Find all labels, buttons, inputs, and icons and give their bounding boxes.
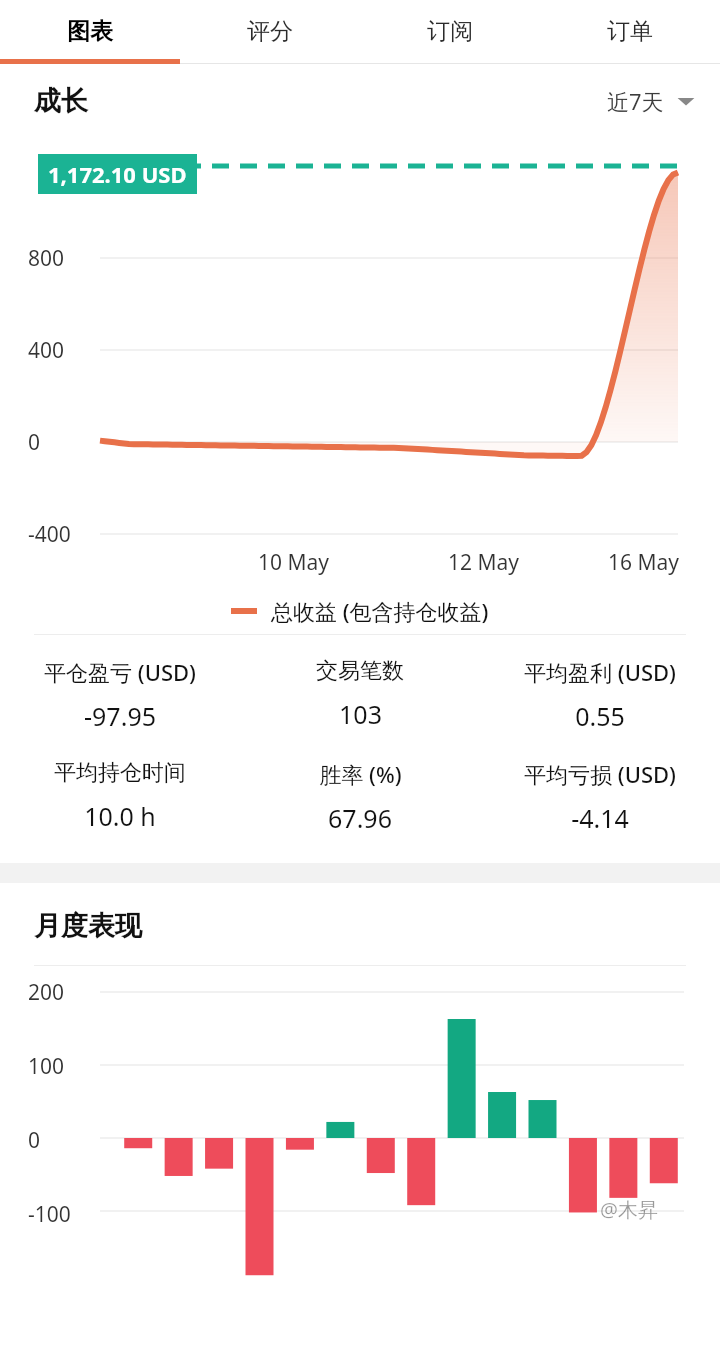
staticText: 0 <box>28 428 41 457</box>
staticText: 平仓盈亏 (USD) <box>44 657 196 687</box>
button[interactable]: 订单 <box>540 0 720 62</box>
staticText: 评分 <box>247 17 293 46</box>
staticText: 16 May <box>608 548 680 577</box>
staticText: 0 <box>28 1126 41 1155</box>
staticText: 交易笔数 <box>316 657 404 685</box>
staticText: -400 <box>28 520 71 549</box>
staticText: 成长 <box>34 84 88 118</box>
button[interactable]: 订阅 <box>360 0 540 62</box>
staticText: 100 <box>28 1052 65 1081</box>
staticText: 胜率 (%) <box>319 759 402 789</box>
staticText: 0.55 <box>575 699 625 733</box>
staticText: 800 <box>28 244 65 273</box>
staticText: 平均亏损 (USD) <box>524 759 676 789</box>
staticText: 103 <box>339 697 382 731</box>
staticText: 10 May <box>258 548 330 577</box>
staticText: -4.14 <box>571 801 629 835</box>
staticText: 12 May <box>448 548 520 577</box>
staticText: 总收益 (包含持仓收益) <box>271 596 489 626</box>
staticText: -97.95 <box>84 699 156 733</box>
staticText: 图表 <box>67 17 113 46</box>
button[interactable]: 近7天 <box>607 86 696 116</box>
button[interactable]: 评分 <box>180 0 360 62</box>
staticText: 平均持仓时间 <box>54 759 186 787</box>
staticText: 400 <box>28 336 65 365</box>
staticText: 平均盈利 (USD) <box>524 657 676 687</box>
staticText: 200 <box>28 978 65 1007</box>
staticText: 订单 <box>607 17 653 46</box>
other: Select period <box>676 94 696 108</box>
button[interactable]: 图表 <box>0 0 180 62</box>
staticText: -100 <box>28 1200 71 1229</box>
staticText: 近7天 <box>607 86 664 116</box>
staticText: 订阅 <box>427 17 473 46</box>
staticText: 月度表现 <box>34 909 142 943</box>
staticText: 10.0 h <box>84 799 156 833</box>
staticText: 67.96 <box>328 801 392 835</box>
staticText: @木昇 <box>600 1196 658 1223</box>
staticText: 1,172.10 USD <box>48 159 187 189</box>
